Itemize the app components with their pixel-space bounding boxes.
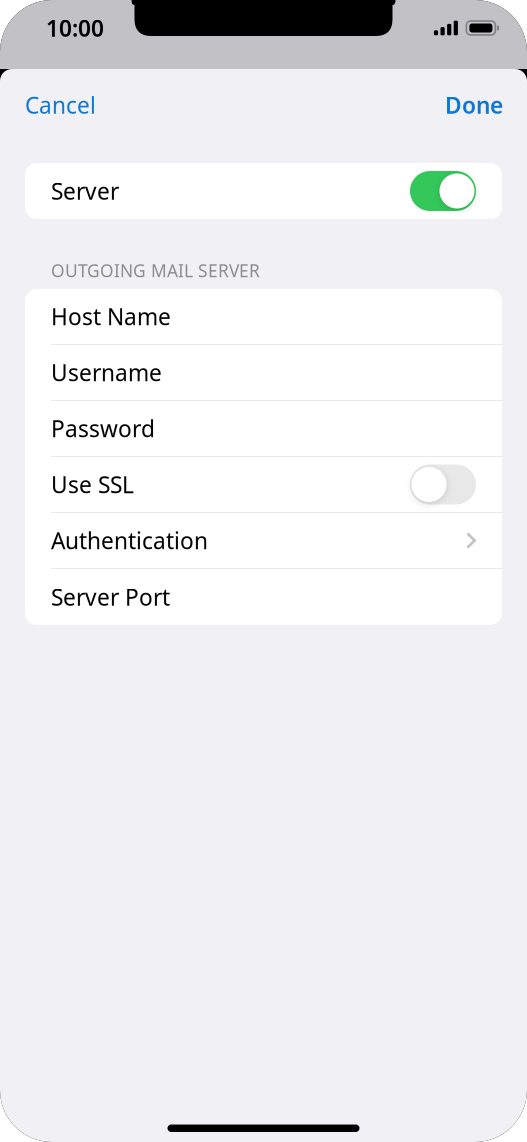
button[interactable]: Done <box>429 77 527 133</box>
staticText: Server <box>51 176 119 206</box>
staticText: Password <box>51 413 155 443</box>
staticText: Host Name <box>51 301 171 331</box>
button[interactable]: Server Port <box>25 569 502 625</box>
staticText: OUTGOING MAIL SERVER <box>51 259 260 282</box>
button[interactable]: Use SSL <box>25 457 502 512</box>
staticText: Done <box>445 90 503 120</box>
staticText: Authentication <box>51 525 208 555</box>
button[interactable]: Username <box>25 345 502 400</box>
staticText: Use SSL <box>51 469 134 499</box>
button[interactable]: Host Name <box>25 289 502 344</box>
button[interactable]: Password <box>25 401 502 456</box>
button[interactable]: Cancel <box>0 77 112 133</box>
staticText: Cancel <box>25 90 96 120</box>
button[interactable]: Authentication <box>25 513 502 568</box>
staticText: 10:00 <box>46 13 104 43</box>
button[interactable]: Server <box>25 163 502 219</box>
staticText: Server Port <box>51 582 170 612</box>
staticText: Username <box>51 357 162 387</box>
